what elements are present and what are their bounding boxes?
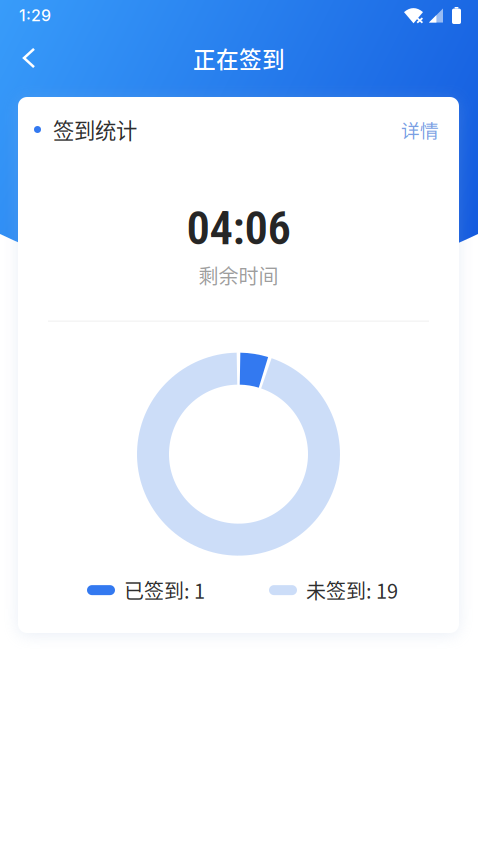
staticText: 04:06 — [186, 201, 290, 256]
button[interactable]: Back — [6, 35, 52, 81]
staticText: 未签到: 19 — [306, 576, 398, 605]
staticText: 剩余时间 — [198, 261, 278, 290]
staticText: 1:29 — [19, 6, 51, 25]
staticText: 签到统计 — [53, 114, 137, 145]
staticText: 正在签到 — [193, 42, 285, 74]
staticText: 详情 — [401, 116, 439, 143]
staticText: 已签到: 1 — [124, 576, 205, 605]
button[interactable]: 详情 — [398, 109, 442, 150]
